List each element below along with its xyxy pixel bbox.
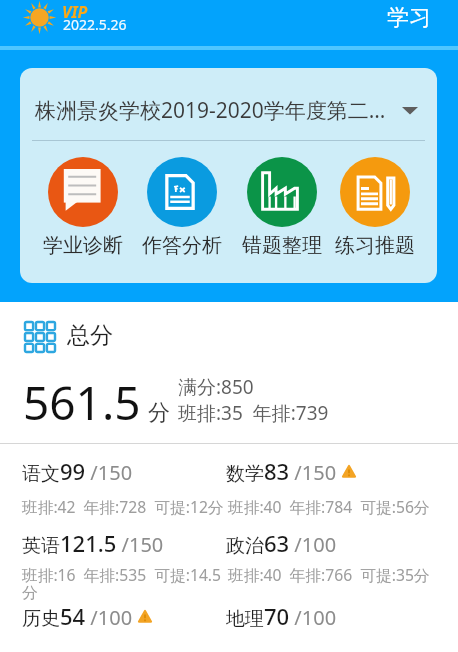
- button[interactable]: 株洲景炎学校2019-2020学年度第二…: [35, 68, 428, 140]
- button[interactable]: 地理70 /100: [226, 601, 337, 631]
- staticText: 总分: [67, 321, 113, 350]
- staticText: 分: [148, 399, 170, 427]
- staticText: 数学83 /150: [226, 456, 337, 486]
- button[interactable]: 数学83 /150: [226, 456, 357, 486]
- button[interactable]: 练习推题: [325, 157, 425, 258]
- button[interactable]: 错题整理: [232, 157, 332, 258]
- staticText: 班排:16 年排:535 可提:14.5分: [22, 564, 225, 603]
- staticText: VIP: [62, 1, 88, 23]
- button[interactable]: 英语121.5 /150: [22, 528, 164, 558]
- button[interactable]: 历史54 /100: [22, 601, 153, 631]
- staticText: 英语121.5 /150: [22, 528, 164, 558]
- staticText: 错题整理: [242, 233, 322, 258]
- staticText: 班排:42 年排:728 可提:12分: [22, 496, 224, 517]
- staticText: 学业诊断: [43, 233, 123, 258]
- button[interactable]: 语文99 /150: [22, 456, 133, 486]
- staticText: 历史54 /100: [22, 601, 133, 631]
- staticText: 株洲景炎学校2019-2020学年度第二…: [35, 96, 412, 125]
- staticText: 作答分析: [142, 233, 222, 258]
- staticText: 语文99 /150: [22, 456, 133, 486]
- button[interactable]: 作答分析: [132, 157, 232, 258]
- staticText: 2022.5.26: [63, 15, 127, 34]
- staticText: 班排:40 年排:766 可提:35分: [228, 564, 430, 585]
- button[interactable]: 学业诊断: [33, 157, 133, 258]
- button[interactable]: 政治63 /100: [226, 528, 337, 558]
- staticText: 561.5: [23, 371, 141, 434]
- staticText: 练习推题: [335, 233, 415, 258]
- staticText: 地理70 /100: [226, 601, 337, 631]
- staticText: 班排:40 年排:784 可提:56分: [228, 496, 430, 517]
- button[interactable]: 学习: [387, 4, 431, 32]
- staticText: 班排:35 年排:739: [178, 400, 329, 426]
- staticText: 满分:850: [178, 374, 254, 400]
- staticText: 学习: [387, 4, 431, 32]
- staticText: 政治63 /100: [226, 528, 337, 558]
